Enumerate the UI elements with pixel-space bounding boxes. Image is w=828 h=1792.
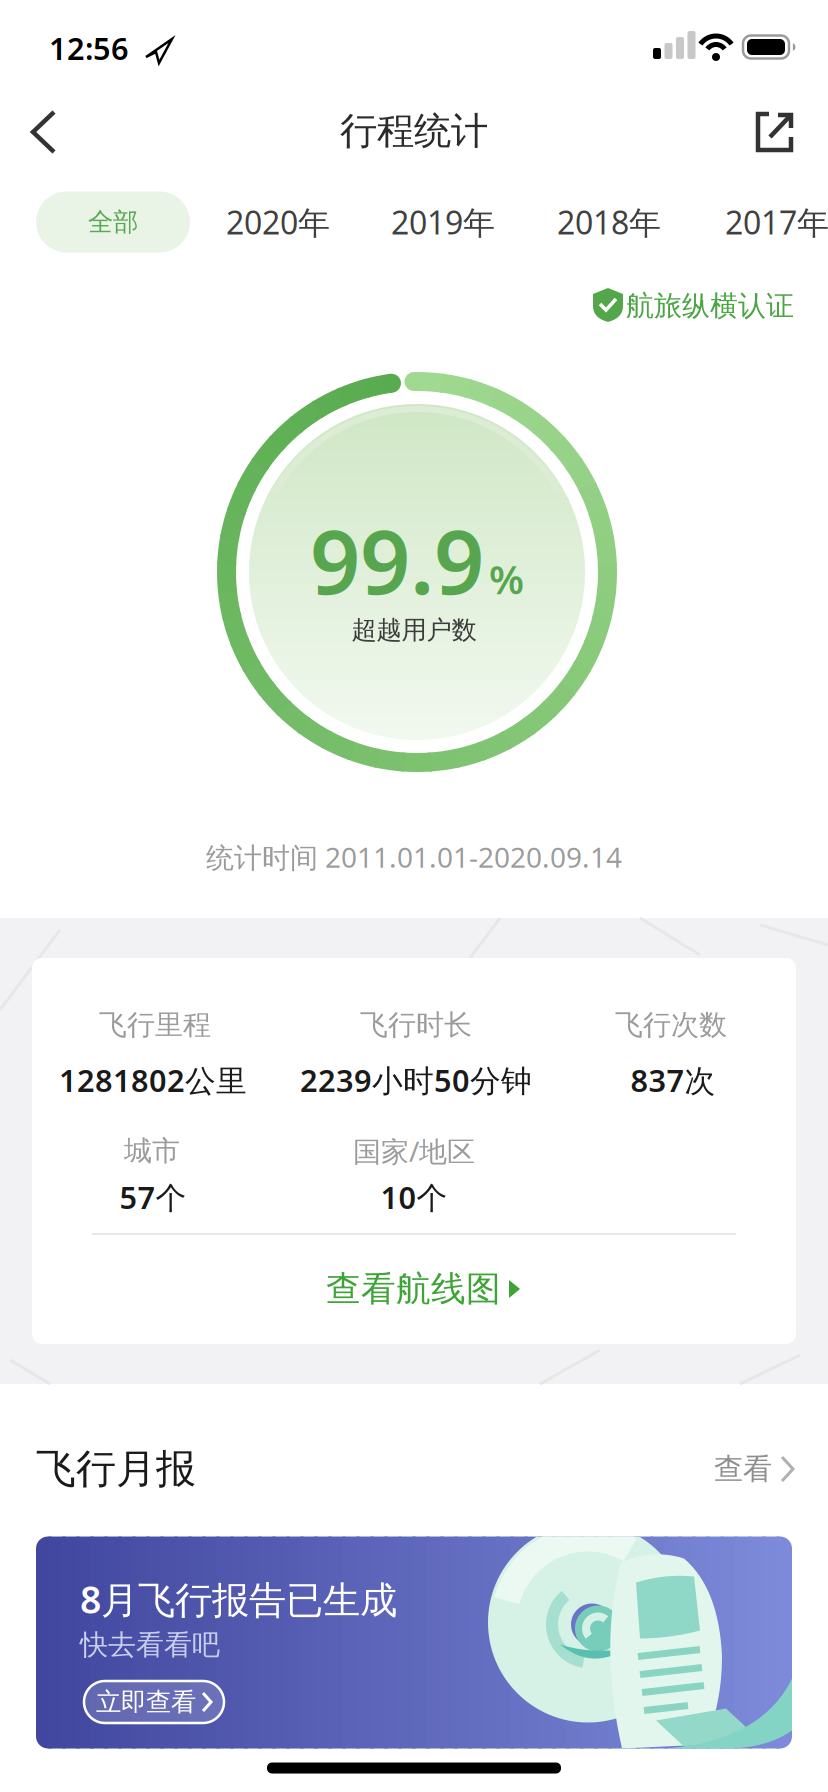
staticText: 2020年 (226, 201, 330, 243)
staticText: 2239小时50分钟 (300, 1060, 532, 1100)
button[interactable]: 2017年 (725, 201, 828, 243)
button[interactable]: 2020年 (226, 201, 330, 243)
staticText: % (489, 552, 524, 605)
staticText: 99.9 (310, 502, 484, 618)
staticText: 全部 (88, 206, 138, 237)
staticText: 2019年 (391, 201, 495, 243)
staticText: 航旅纵横认证 (626, 289, 794, 323)
staticText: 国家/地区 (353, 1132, 475, 1170)
staticText: 2017年 (725, 201, 828, 243)
staticText: 12:56 (49, 28, 129, 68)
button[interactable]: 2019年 (391, 201, 495, 243)
button[interactable]: 查看 (714, 1451, 794, 1487)
button[interactable]: 全部 (36, 191, 190, 252)
button[interactable]: 查看航线图 (326, 1268, 520, 1310)
staticText: 飞行次数 (615, 1008, 727, 1042)
staticText: 超越用户数 (351, 614, 476, 645)
staticText: 2018年 (557, 201, 661, 243)
staticText: 57个 (119, 1177, 186, 1217)
staticText: 1281802公里 (59, 1060, 247, 1100)
staticText: 查看航线图 (326, 1268, 501, 1310)
staticText: 飞行时长 (360, 1008, 472, 1042)
staticText: 飞行里程 (99, 1008, 211, 1042)
staticText: 行程统计 (340, 108, 488, 154)
button[interactable] (36, 1536, 792, 1748)
button[interactable] (745, 104, 801, 160)
staticText: 837次 (630, 1060, 715, 1100)
staticText: 飞行月报 (36, 1444, 196, 1493)
button[interactable] (14, 106, 74, 158)
staticText: 查看 (714, 1451, 772, 1487)
button[interactable]: 2018年 (557, 201, 661, 243)
button[interactable]: 立即查看 (84, 1681, 224, 1723)
staticText: 10个 (380, 1177, 447, 1217)
staticText: 8月飞行报告已生成 (80, 1574, 397, 1624)
staticText: 城市 (124, 1134, 180, 1168)
staticText: 快去看看吧 (80, 1628, 220, 1662)
staticText: 统计时间 2011.01.01-2020.09.14 (206, 838, 622, 876)
staticText: 立即查看 (96, 1686, 196, 1717)
